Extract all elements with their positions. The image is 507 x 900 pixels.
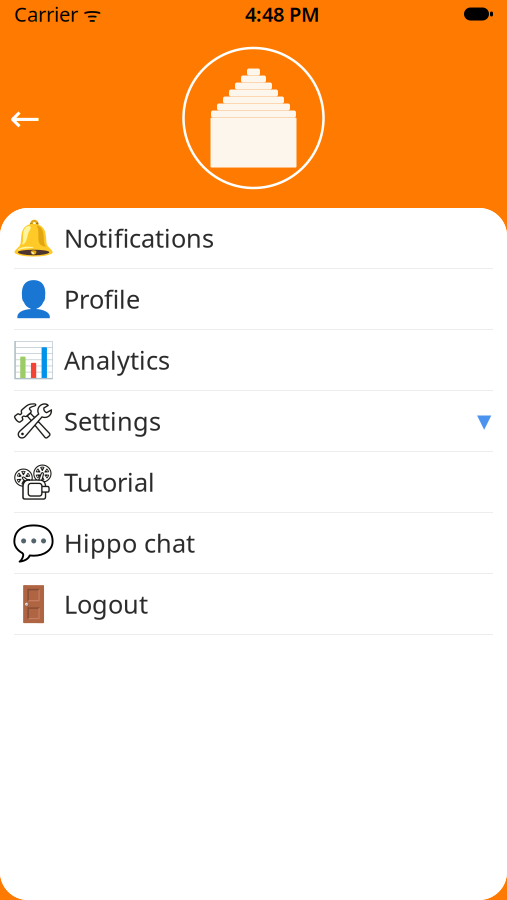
staticText: 👤 [11, 279, 54, 319]
staticText: Carrier ᯤ [14, 1, 101, 27]
staticText: Tutorial [64, 465, 155, 499]
button[interactable]: 📊 [0, 330, 507, 391]
staticText: 🚪 [11, 584, 54, 624]
button[interactable]: 👤 [0, 269, 507, 330]
staticText: 💬 [11, 523, 54, 563]
staticText: Logout [64, 587, 148, 621]
staticText: ← [9, 97, 40, 139]
staticText: Notifications [64, 221, 214, 255]
staticText: Profile [64, 282, 140, 316]
button[interactable]: 🚪 [0, 574, 507, 635]
staticText: 🔔 [11, 218, 54, 258]
staticText: 📽 [11, 462, 55, 502]
staticText: ▼ [477, 410, 491, 432]
staticText: Analytics [64, 343, 170, 377]
button[interactable]: 💬 [0, 513, 507, 574]
button[interactable]: Back [2, 95, 48, 141]
staticText: 🛠 [11, 401, 55, 441]
staticText: 4:48 PM [245, 1, 320, 27]
staticText: 📊 [11, 340, 54, 380]
button[interactable]: 🔔 [0, 208, 507, 269]
staticText: Hippo chat [64, 526, 195, 560]
button[interactable]: 🛠 [0, 391, 507, 452]
staticText: Settings [64, 404, 161, 438]
button[interactable]: 📽 [0, 452, 507, 513]
